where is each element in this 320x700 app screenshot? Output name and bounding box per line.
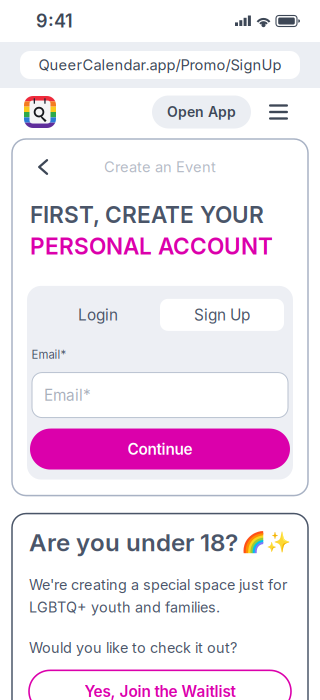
staticText: Are you under 18? — [29, 528, 238, 557]
staticText: Open App — [167, 103, 236, 120]
button[interactable]: Menu — [260, 96, 297, 128]
staticText: 🌈✨ — [241, 531, 291, 554]
staticText: PERSONAL ACCOUNT — [30, 232, 273, 260]
button[interactable]: QueerCalendar.app/Promo/SignUp — [20, 51, 300, 79]
staticText: Email* — [44, 386, 91, 404]
staticText: Email* — [31, 348, 66, 362]
staticText: Login — [78, 306, 118, 324]
staticText: 9:41 — [36, 10, 73, 32]
staticText: FIRST, CREATE YOUR — [30, 201, 264, 228]
button[interactable]: Login — [36, 299, 160, 331]
staticText: Create an Event — [104, 158, 216, 176]
button[interactable]: Continue — [30, 429, 290, 470]
button[interactable]: Sign Up — [160, 299, 284, 331]
staticText: QueerCalendar.app/Promo/SignUp — [38, 56, 281, 74]
button[interactable]: Back — [33, 154, 53, 180]
button[interactable]: Yes, Join the Waitlist — [29, 670, 291, 700]
staticText: Sign Up — [194, 306, 250, 324]
staticText: Continue — [127, 440, 192, 458]
staticText: Would you like to check it out? — [29, 639, 237, 656]
staticText: We're creating a special space just for — [29, 576, 287, 593]
staticText: Yes, Join the Waitlist — [84, 682, 235, 700]
staticText: LGBTQ+ youth and families. — [29, 598, 220, 616]
button[interactable]: Open App — [152, 95, 251, 128]
